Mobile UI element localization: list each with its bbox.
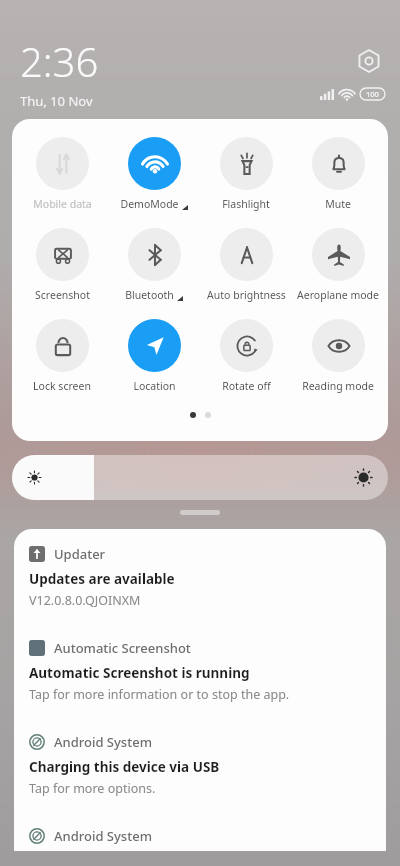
button[interactable]: Auto brightness: [204, 226, 288, 304]
button[interactable]: Mobile data: [20, 135, 104, 213]
button[interactable]: Brightness: [12, 455, 388, 500]
staticText: Tap for more information or to stop the …: [29, 686, 290, 703]
button[interactable]: Settings: [352, 44, 386, 78]
staticText: Updater: [54, 545, 106, 563]
staticText: Thu, 10 Nov: [20, 92, 93, 110]
button[interactable]: Android System: [14, 811, 386, 851]
staticText: 100: [366, 89, 379, 99]
staticText: Location: [133, 379, 176, 393]
button[interactable]: Screenshot: [20, 226, 104, 304]
button[interactable]: Aeroplane mode: [296, 226, 380, 304]
staticText: 2:36: [20, 34, 99, 88]
staticText: Updates are available: [29, 570, 175, 588]
staticText: Mute: [325, 197, 351, 211]
button[interactable]: Reading mode: [296, 317, 380, 395]
button[interactable]: Lock screen: [20, 317, 104, 395]
staticText: Charging this device via USB: [29, 758, 220, 776]
button[interactable]: Bluetooth: [112, 226, 196, 304]
button[interactable]: Mute: [296, 135, 380, 213]
button[interactable]: Rotate off: [204, 317, 288, 395]
staticText: Automatic Screenshot is running: [29, 664, 250, 682]
button[interactable]: Flashlight: [204, 135, 288, 213]
button[interactable]: DemoMode: [112, 135, 196, 213]
button[interactable]: Expand: [180, 510, 220, 515]
button[interactable]: Updater: [14, 529, 386, 623]
staticText: Bluetooth: [125, 288, 174, 302]
staticText: Automatic Screenshot: [54, 639, 191, 657]
staticText: Android System: [54, 733, 152, 751]
button[interactable]: Location: [112, 317, 196, 395]
button[interactable]: Automatic Screenshot: [14, 623, 386, 717]
staticText: V12.0.8.0.QJOINXM: [29, 592, 141, 609]
staticText: Screenshot: [35, 288, 90, 302]
staticText: DemoMode: [120, 197, 179, 211]
staticText: Flashlight: [222, 197, 270, 211]
staticText: Android System: [54, 827, 152, 845]
button[interactable]: Android System: [14, 717, 386, 811]
staticText: Reading mode: [302, 379, 374, 393]
staticText: Lock screen: [33, 379, 91, 393]
staticText: Auto brightness: [207, 288, 286, 302]
staticText: Tap for more options.: [29, 780, 156, 797]
staticText: Aeroplane mode: [297, 288, 379, 302]
staticText: Rotate off: [222, 379, 271, 393]
staticText: Mobile data: [33, 197, 92, 211]
